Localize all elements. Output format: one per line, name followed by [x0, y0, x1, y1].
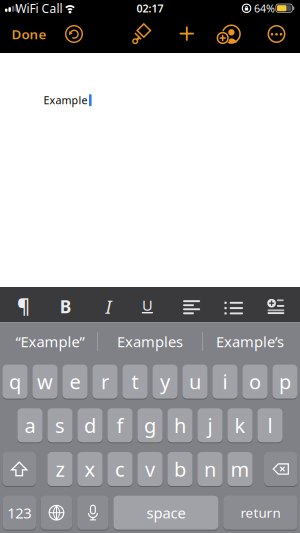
staticText: U [142, 295, 153, 315]
staticText: d [84, 412, 96, 439]
staticText: s [55, 412, 65, 439]
staticText: w [37, 368, 53, 395]
staticText: r [101, 368, 109, 395]
staticText: Example [43, 93, 87, 107]
button[interactable]: b [167, 452, 193, 487]
button[interactable]: Examples [102, 326, 198, 356]
staticText: z [55, 456, 64, 482]
button[interactable]: “Example” [2, 326, 98, 356]
staticText: p [279, 368, 291, 395]
button[interactable]: p [272, 365, 298, 400]
staticText: 64% [254, 1, 275, 15]
button[interactable]: o [242, 365, 268, 400]
button[interactable]: B [51, 291, 81, 321]
button[interactable]: j [197, 408, 223, 443]
button[interactable]: s [47, 408, 73, 443]
staticText: space [146, 503, 185, 522]
staticText: Examples [117, 332, 183, 351]
staticText: b [174, 456, 186, 482]
staticText: I [106, 294, 112, 319]
staticText: x [84, 456, 95, 482]
button[interactable]: 123 [2, 496, 36, 531]
button[interactable] [218, 23, 244, 49]
staticText: Done [11, 25, 46, 43]
button[interactable]: a [17, 408, 43, 443]
staticText: 02:17 [136, 1, 163, 15]
button[interactable]: u [182, 365, 208, 400]
staticText: q [9, 368, 21, 395]
staticText: y [160, 368, 170, 395]
button[interactable]: y [152, 365, 178, 400]
button[interactable]: c [107, 452, 133, 487]
staticText: g [144, 412, 156, 439]
button[interactable]: U [132, 290, 162, 320]
button[interactable]: f [107, 408, 133, 443]
button[interactable]: q [2, 365, 28, 400]
button[interactable] [267, 299, 284, 314]
button[interactable] [65, 25, 83, 43]
button[interactable]: g [137, 408, 163, 443]
button[interactable]: ¶ [8, 290, 38, 320]
button[interactable]: space [113, 496, 218, 531]
button[interactable] [223, 301, 243, 315]
button[interactable]: return [223, 496, 298, 531]
staticText: Example’s [216, 332, 284, 351]
button[interactable]: i [212, 365, 238, 400]
staticText: n [204, 456, 216, 482]
button[interactable]: t [122, 365, 148, 400]
button[interactable]: v [137, 452, 163, 487]
button[interactable]: k [227, 408, 253, 443]
staticText: e [69, 368, 80, 395]
button[interactable]: I [94, 291, 124, 321]
staticText: return [240, 504, 280, 521]
button[interactable] [264, 452, 298, 487]
button[interactable]: r [92, 365, 118, 400]
button[interactable]: x [77, 452, 103, 487]
button[interactable]: e [62, 365, 88, 400]
staticText: c [115, 456, 125, 482]
button[interactable] [2, 452, 36, 487]
button[interactable]: z [47, 452, 73, 487]
staticText: k [234, 412, 245, 439]
staticText: WiFi Call [15, 0, 62, 16]
staticText: B [60, 295, 72, 318]
button[interactable]: l [257, 408, 283, 443]
staticText: “Example” [15, 332, 84, 351]
staticText: v [145, 456, 155, 482]
button[interactable]: d [77, 408, 103, 443]
button[interactable]: m [227, 452, 253, 487]
staticText: ¶ [17, 292, 30, 319]
staticText: t [131, 368, 138, 395]
staticText: u [189, 368, 201, 395]
button[interactable]: n [197, 452, 223, 487]
staticText: h [174, 412, 186, 439]
button[interactable]: Done [11, 25, 46, 43]
button[interactable] [179, 26, 194, 41]
staticText: 123 [7, 503, 31, 522]
staticText: f [116, 412, 123, 439]
staticText: o [249, 368, 261, 395]
button[interactable] [77, 496, 109, 531]
button[interactable]: w [32, 365, 58, 400]
button[interactable] [267, 24, 286, 43]
button[interactable]: h [167, 408, 193, 443]
staticText: m [230, 456, 249, 482]
staticText: j [207, 412, 212, 439]
button[interactable] [183, 300, 200, 314]
button[interactable] [41, 496, 72, 531]
staticText: i [222, 368, 227, 395]
staticText: a [24, 412, 35, 439]
button[interactable] [132, 23, 154, 45]
button[interactable]: Example’s [202, 326, 298, 356]
staticText: l [267, 412, 272, 439]
